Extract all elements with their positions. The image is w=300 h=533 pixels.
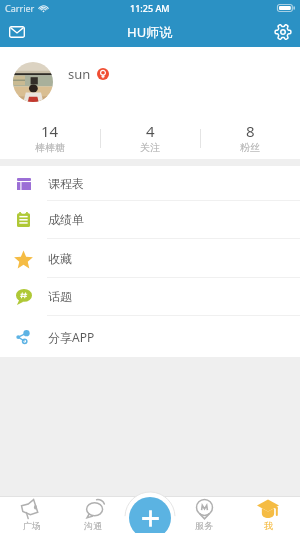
- staticText: 沟通: [84, 520, 102, 531]
- staticText: 8: [246, 121, 255, 141]
- button[interactable]: 服务: [180, 496, 240, 533]
- button[interactable]: 14: [0, 113, 100, 159]
- staticText: 广场: [23, 520, 41, 531]
- staticText: 11:25 AM: [130, 2, 170, 14]
- button[interactable]: 成绩单: [0, 201, 300, 239]
- staticText: 关注: [140, 141, 160, 154]
- staticText: 服务: [195, 520, 213, 531]
- staticText: 课程表: [48, 176, 84, 191]
- staticText: Carrier: [5, 2, 35, 14]
- button[interactable]: 课程表: [0, 166, 300, 201]
- staticText: 我: [264, 520, 273, 531]
- button[interactable]: Add: [129, 497, 171, 533]
- button[interactable]: 4: [100, 113, 200, 159]
- button[interactable]: [13, 62, 53, 102]
- button[interactable]: 我: [240, 496, 300, 533]
- button[interactable]: 沟通: [60, 496, 120, 533]
- staticText: 粉丝: [240, 141, 260, 154]
- button[interactable]: 分享APP: [0, 316, 300, 357]
- button[interactable]: Settings: [271, 20, 295, 44]
- staticText: 棒棒糖: [35, 141, 65, 154]
- staticText: 14: [41, 121, 59, 141]
- button[interactable]: Messages: [5, 20, 29, 44]
- staticText: sun: [68, 65, 91, 83]
- button[interactable]: 8: [200, 113, 300, 159]
- staticText: 4: [146, 121, 155, 141]
- button[interactable]: 话题: [0, 278, 300, 316]
- staticText: 成绩单: [48, 212, 84, 227]
- staticText: 分享APP: [48, 329, 95, 345]
- staticText: 收藏: [48, 251, 72, 266]
- staticText: 话题: [48, 289, 72, 304]
- staticText: HU师说: [127, 23, 173, 41]
- button[interactable]: 广场: [0, 496, 60, 533]
- button[interactable]: 收藏: [0, 239, 300, 278]
